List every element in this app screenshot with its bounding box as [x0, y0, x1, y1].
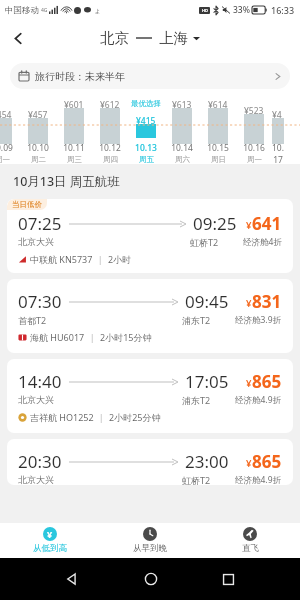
staticText: 海航 HU6017 [30, 331, 85, 343]
staticText: 周一 [0, 155, 10, 164]
staticText: ¥614 [208, 99, 228, 111]
staticText: 从早到晚 [133, 543, 167, 554]
staticText: | [85, 331, 100, 343]
staticText: 2小时25分钟 [109, 411, 161, 423]
staticText: 10.17 [272, 142, 284, 164]
button[interactable]: 旅行时段： [10, 63, 290, 89]
staticText: 北京大兴 [18, 236, 54, 247]
staticText: 首都T2 [18, 314, 47, 326]
button[interactable]: ¥601 [56, 98, 92, 164]
staticText: 虹桥T2 [190, 236, 219, 248]
staticText: 经济舱4折 [243, 236, 282, 248]
button[interactable]: ¥523 [236, 98, 272, 164]
staticText: 10.14 [171, 142, 193, 154]
button[interactable]: ¥ [0, 523, 100, 558]
staticText: 经济舱4.9折 [235, 474, 282, 485]
button[interactable]: Back [0, 20, 36, 56]
staticText: 直飞 [242, 543, 259, 554]
staticText: 10.12 [99, 142, 121, 154]
other: Back [65, 572, 79, 586]
staticText: ¥ [47, 528, 53, 540]
staticText: HD [202, 8, 208, 13]
staticText: 10.09 [0, 142, 13, 154]
staticText: ¥ [246, 457, 252, 470]
staticText: 上海 [159, 29, 188, 47]
staticText: 2小时15分钟 [100, 331, 152, 343]
staticText: 周六 [175, 155, 190, 164]
staticText: 07:25 [18, 212, 62, 235]
staticText: 吉祥航 HO1252 [30, 411, 94, 423]
staticText: ¥457 [28, 109, 48, 121]
staticText: 经济舱3.9折 [235, 314, 282, 326]
button[interactable]: 北京 [96, 25, 204, 51]
staticText: 10月13日 周五航班 [13, 173, 120, 190]
staticText: 09:45 [185, 290, 229, 313]
other: Recents [222, 573, 235, 586]
staticText: ¥601 [64, 99, 84, 111]
button[interactable]: 07:30 [7, 279, 293, 353]
button[interactable]: 最优选择 [128, 98, 164, 164]
staticText: 周二 [31, 155, 46, 164]
staticText: 北京大兴 [18, 394, 54, 405]
staticText: 周五 [139, 155, 154, 164]
staticText: 10.13 [135, 142, 157, 154]
staticText: 865 [252, 450, 282, 473]
button[interactable]: ¥454 [0, 98, 20, 164]
button[interactable]: ¥457 [20, 98, 56, 164]
staticText: 浦东T2 [182, 394, 211, 406]
button[interactable]: ¥428 [272, 98, 284, 164]
staticText: 16:33 [271, 4, 295, 16]
staticText: 33% [233, 4, 250, 16]
button[interactable]: 当日低价 [7, 199, 293, 273]
staticText: 周三 [67, 155, 82, 164]
staticText: 未来半年 [85, 70, 125, 83]
staticText: 10.16 [243, 142, 265, 154]
button[interactable]: ¥612 [92, 98, 128, 164]
staticText: 中国移动 [5, 5, 39, 16]
staticText: 周四 [103, 155, 118, 164]
staticText: 北京 [100, 29, 129, 47]
staticText: ¥613 [172, 99, 192, 111]
staticText: ¥454 [0, 109, 12, 121]
other: Home [144, 572, 158, 586]
staticText: | [93, 253, 108, 265]
staticText: 2小时 [108, 253, 132, 265]
staticText: 865 [252, 370, 282, 393]
button[interactable]: 从早到晚 [100, 523, 200, 558]
staticText: 周日 [211, 155, 226, 164]
staticText: ¥428 [272, 109, 284, 133]
staticText: 经济舱4.9折 [235, 394, 282, 406]
staticText: ¥523 [244, 105, 264, 117]
staticText: ¥ [246, 377, 252, 390]
staticText: 从低到高 [33, 543, 67, 554]
staticText: 旅行时段： [35, 70, 85, 83]
staticText: 虹桥T2 [182, 474, 211, 485]
staticText: 17:05 [185, 370, 229, 393]
button[interactable]: 20:30 [7, 439, 293, 485]
staticText: ¥612 [100, 99, 120, 111]
staticText: 23:00 [185, 450, 229, 473]
staticText: 4G [41, 7, 48, 14]
staticText: 07:30 [18, 290, 62, 313]
button[interactable]: ¥613 [164, 98, 200, 164]
staticText: 09:25 [193, 212, 237, 235]
button[interactable]: 直飞 [200, 523, 300, 558]
staticText: 641 [252, 212, 282, 235]
staticText: 周一 [247, 155, 262, 164]
staticText: 831 [252, 290, 282, 313]
staticText: | [94, 411, 109, 423]
staticText: 10.11 [63, 142, 85, 154]
button[interactable]: 14:40 [7, 359, 293, 433]
staticText: 当日低价 [12, 200, 42, 209]
staticText: ¥415 [136, 115, 156, 127]
staticText: 中联航 KN5737 [30, 253, 93, 265]
staticText: 14:40 [18, 370, 62, 393]
staticText: ょ [94, 6, 102, 15]
staticText: ¥ [246, 297, 252, 310]
staticText: 10.10 [27, 142, 49, 154]
staticText: ¥ [246, 219, 252, 232]
staticText: 北京大兴 [18, 474, 54, 485]
staticText: 浦东T2 [182, 314, 211, 326]
staticText: 10.15 [207, 142, 229, 154]
button[interactable]: ¥614 [200, 98, 236, 164]
